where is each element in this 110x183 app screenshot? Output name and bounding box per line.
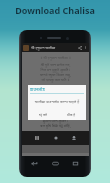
staticText: ॥ श्री हनुमान चालीसा ॥ — [22, 55, 89, 60]
button[interactable]: More options — [83, 45, 88, 50]
staticText: बरनउँ रघुबर बिमल जसु, — [22, 72, 89, 77]
button[interactable]: Home — [51, 159, 60, 168]
button[interactable]: Back — [30, 159, 39, 168]
staticText: श्री गुरु चरन सरोज रज, — [22, 62, 89, 67]
button[interactable]: ठीक है — [57, 110, 86, 119]
staticText: बल बुधि बिद्या देहु मोहिं, — [22, 123, 89, 128]
staticText: बुद्धिहीन तनु जानिके, — [22, 113, 89, 118]
staticText: श्री हनुमान चालीसा — [31, 45, 56, 50]
staticText: चालीसा डाउनलोड करना चाहते हैं — [28, 99, 86, 104]
button[interactable]: Share — [77, 45, 83, 51]
staticText: सुमिरौं पवन-कुमार । — [22, 118, 89, 123]
staticText: निज मन मुकुरु सुधारि । — [22, 67, 89, 72]
staticText: डाउनलोड — [30, 86, 45, 92]
button[interactable]: Pause — [33, 134, 41, 142]
button[interactable]: डाउनलोड — [28, 85, 86, 120]
staticText: ठीक है — [67, 112, 76, 117]
button[interactable]: Download — [70, 134, 78, 142]
button[interactable]: Call — [52, 134, 60, 142]
staticText: Download Chalisa — [0, 4, 110, 16]
button[interactable]: Recents — [71, 159, 80, 168]
staticText: जो दायकु फल चारि ॥ — [22, 77, 89, 82]
staticText: रद्द करें — [39, 112, 47, 117]
button[interactable]: रद्द करें — [28, 110, 57, 119]
